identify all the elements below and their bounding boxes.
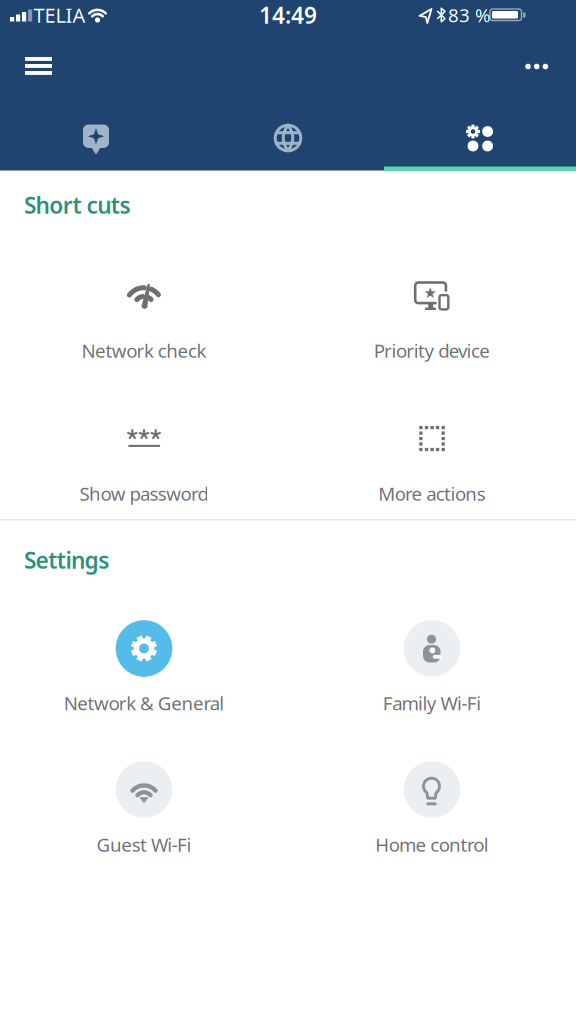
button[interactable]: Show password <box>24 415 264 515</box>
button[interactable]: Network check <box>24 260 264 370</box>
staticText: Home control <box>375 832 489 857</box>
button[interactable] <box>515 48 559 85</box>
button[interactable] <box>192 100 384 170</box>
staticText: Settings <box>24 545 109 575</box>
button[interactable]: Guest Wi-Fi <box>24 751 264 871</box>
button[interactable] <box>384 100 576 170</box>
button[interactable]: Network & General <box>24 610 264 730</box>
button[interactable]: Priority device <box>312 260 552 370</box>
staticText: Family Wi-Fi <box>383 691 481 715</box>
button[interactable]: Family Wi-Fi <box>312 610 552 730</box>
staticText: 83 % <box>448 3 491 27</box>
staticText: TELIA <box>33 2 85 28</box>
staticText: Short cuts <box>24 190 130 220</box>
button[interactable] <box>0 100 192 170</box>
staticText: Network check <box>82 338 206 363</box>
button[interactable]: More actions <box>312 415 552 515</box>
staticText: Show password <box>80 481 208 506</box>
staticText: Guest Wi-Fi <box>96 832 191 857</box>
staticText: More actions <box>378 481 486 506</box>
staticText: Priority device <box>374 338 490 363</box>
staticText: Network & General <box>64 691 224 715</box>
button[interactable] <box>16 48 60 84</box>
staticText: 14:49 <box>259 0 317 30</box>
button[interactable]: Home control <box>312 751 552 871</box>
